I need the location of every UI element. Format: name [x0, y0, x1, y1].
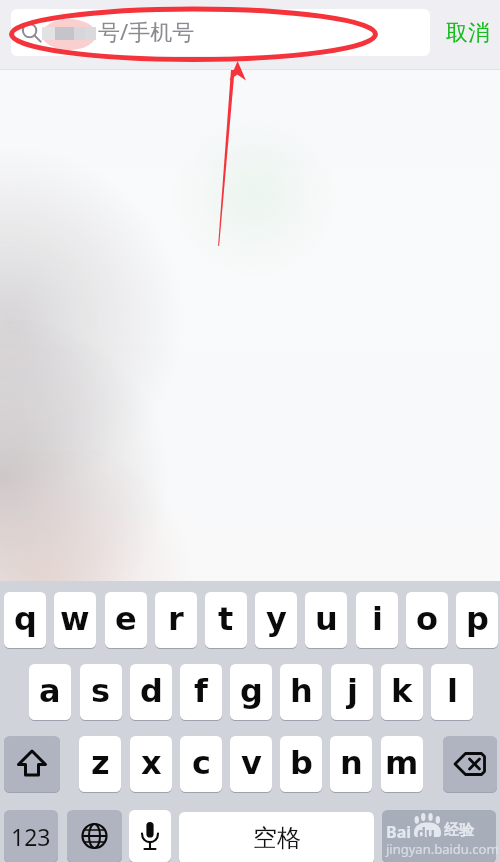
- staticText: b: [290, 744, 313, 781]
- staticText: r: [168, 600, 184, 637]
- staticText: q: [14, 600, 37, 637]
- button[interactable]: 空格: [179, 812, 374, 862]
- button[interactable]: y: [255, 592, 297, 648]
- button[interactable]: k: [381, 664, 423, 720]
- button[interactable]: a: [29, 664, 71, 720]
- staticText: y: [266, 600, 287, 637]
- button[interactable]: 号/手机号: [11, 9, 430, 56]
- staticText: g: [240, 672, 263, 709]
- button[interactable]: 123: [4, 810, 58, 862]
- button[interactable]: 取消: [440, 9, 495, 56]
- button[interactable]: s: [80, 664, 122, 720]
- staticText: j: [347, 672, 358, 709]
- button[interactable]: u: [305, 592, 347, 648]
- staticText: jingyan.baidu.com: [386, 840, 499, 858]
- staticText: d: [140, 672, 163, 709]
- staticText: u: [315, 600, 338, 637]
- staticText: a: [39, 672, 61, 709]
- staticText: f: [194, 672, 208, 709]
- button[interactable]: Backspace: [443, 736, 497, 792]
- staticText: 123: [11, 821, 51, 852]
- staticText: s: [91, 672, 111, 709]
- button[interactable]: v: [230, 736, 272, 792]
- staticText: 空格: [253, 823, 301, 853]
- button[interactable]: x: [130, 736, 172, 792]
- button[interactable]: p: [456, 592, 498, 648]
- staticText: t: [218, 600, 234, 637]
- staticText: h: [290, 672, 313, 709]
- button[interactable]: h: [280, 664, 322, 720]
- button[interactable]: l: [431, 664, 473, 720]
- button[interactable]: z: [79, 736, 121, 792]
- button[interactable]: j: [331, 664, 373, 720]
- staticText: o: [416, 600, 438, 637]
- staticText: e: [115, 600, 137, 637]
- staticText: Bai: [386, 821, 412, 843]
- button[interactable]: Voice input: [129, 810, 171, 862]
- staticText: n: [340, 744, 363, 781]
- staticText: l: [447, 672, 458, 709]
- button[interactable]: w: [54, 592, 96, 648]
- button[interactable]: q: [4, 592, 46, 648]
- button[interactable]: d: [130, 664, 172, 720]
- button[interactable]: b: [280, 736, 322, 792]
- button[interactable]: i: [356, 592, 398, 648]
- staticText: 号/手机号: [98, 16, 195, 46]
- button[interactable]: n: [330, 736, 372, 792]
- button[interactable]: f: [180, 664, 222, 720]
- button[interactable]: c: [180, 736, 222, 792]
- staticText: v: [241, 744, 262, 781]
- staticText: k: [391, 672, 413, 709]
- staticText: c: [192, 744, 211, 781]
- staticText: p: [466, 600, 489, 637]
- staticText: x: [141, 744, 162, 781]
- button[interactable]: e: [105, 592, 147, 648]
- button[interactable]: o: [406, 592, 448, 648]
- staticText: du: [417, 823, 435, 842]
- button[interactable]: [382, 810, 496, 862]
- staticText: 经验: [444, 821, 474, 840]
- button[interactable]: m: [381, 736, 423, 792]
- staticText: 取消: [446, 19, 490, 47]
- staticText: i: [372, 600, 383, 637]
- staticText: z: [91, 744, 110, 781]
- button[interactable]: g: [230, 664, 272, 720]
- button[interactable]: r: [155, 592, 197, 648]
- button[interactable]: t: [205, 592, 247, 648]
- button[interactable]: Shift: [4, 736, 60, 792]
- staticText: w: [60, 600, 90, 637]
- button[interactable]: Switch language: [67, 810, 122, 862]
- staticText: m: [385, 744, 419, 781]
